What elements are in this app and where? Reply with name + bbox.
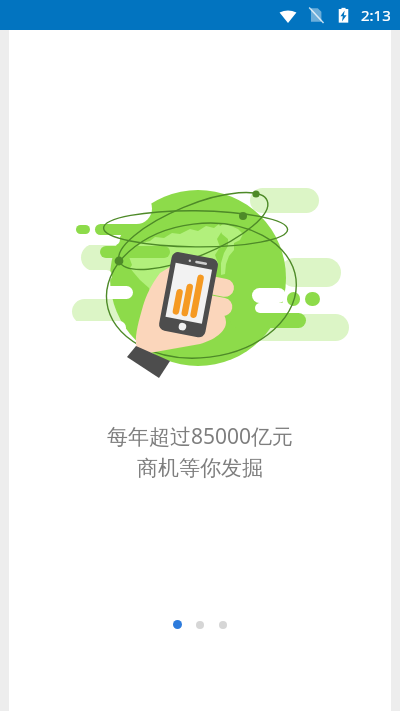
staticText: 每年超过85000亿元 商机等你发掘 [0,422,400,481]
button[interactable]: Page 2 [196,621,204,629]
button[interactable]: Page 3 [219,621,227,629]
staticText: 2:13 [361,5,391,25]
button[interactable]: Page 1 [173,620,182,629]
